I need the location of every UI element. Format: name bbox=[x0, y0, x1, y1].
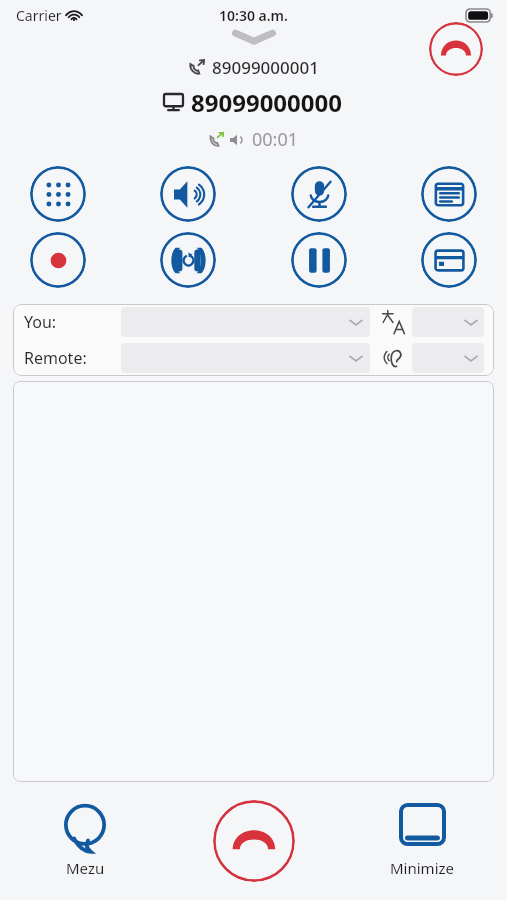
staticText: 89099000000 bbox=[191, 86, 343, 119]
button[interactable] bbox=[412, 343, 484, 373]
staticText: You: bbox=[24, 311, 57, 333]
staticText: Minimize bbox=[390, 858, 455, 878]
button[interactable]: Mute bbox=[291, 166, 347, 222]
button[interactable]: Hold bbox=[291, 232, 347, 288]
button[interactable] bbox=[121, 343, 370, 373]
staticText: 89099000001 bbox=[212, 56, 319, 79]
button[interactable]: Transfer call bbox=[160, 232, 216, 288]
button[interactable] bbox=[412, 307, 484, 337]
button[interactable]: You: bbox=[13, 304, 494, 340]
staticText: Remote: bbox=[24, 347, 87, 369]
button[interactable]: Payment bbox=[421, 232, 477, 288]
button[interactable]: Minimize bbox=[382, 800, 463, 881]
button[interactable]: Record bbox=[30, 232, 86, 288]
button[interactable]: Mezu bbox=[46, 800, 124, 881]
button[interactable]: End call bbox=[213, 800, 295, 882]
staticText: Mezu bbox=[66, 858, 105, 878]
button[interactable]: Messages bbox=[421, 166, 477, 222]
staticText: 00:01 bbox=[252, 127, 299, 152]
staticText: Carrier bbox=[16, 6, 62, 25]
button[interactable]: Speaker bbox=[160, 166, 216, 222]
staticText: 10:30 a.m. bbox=[219, 6, 288, 25]
button[interactable]: Remote: bbox=[13, 340, 494, 376]
button[interactable]: Keypad bbox=[30, 166, 86, 222]
button[interactable] bbox=[121, 307, 370, 337]
button[interactable]: End call bbox=[429, 22, 483, 76]
button[interactable] bbox=[13, 381, 494, 782]
